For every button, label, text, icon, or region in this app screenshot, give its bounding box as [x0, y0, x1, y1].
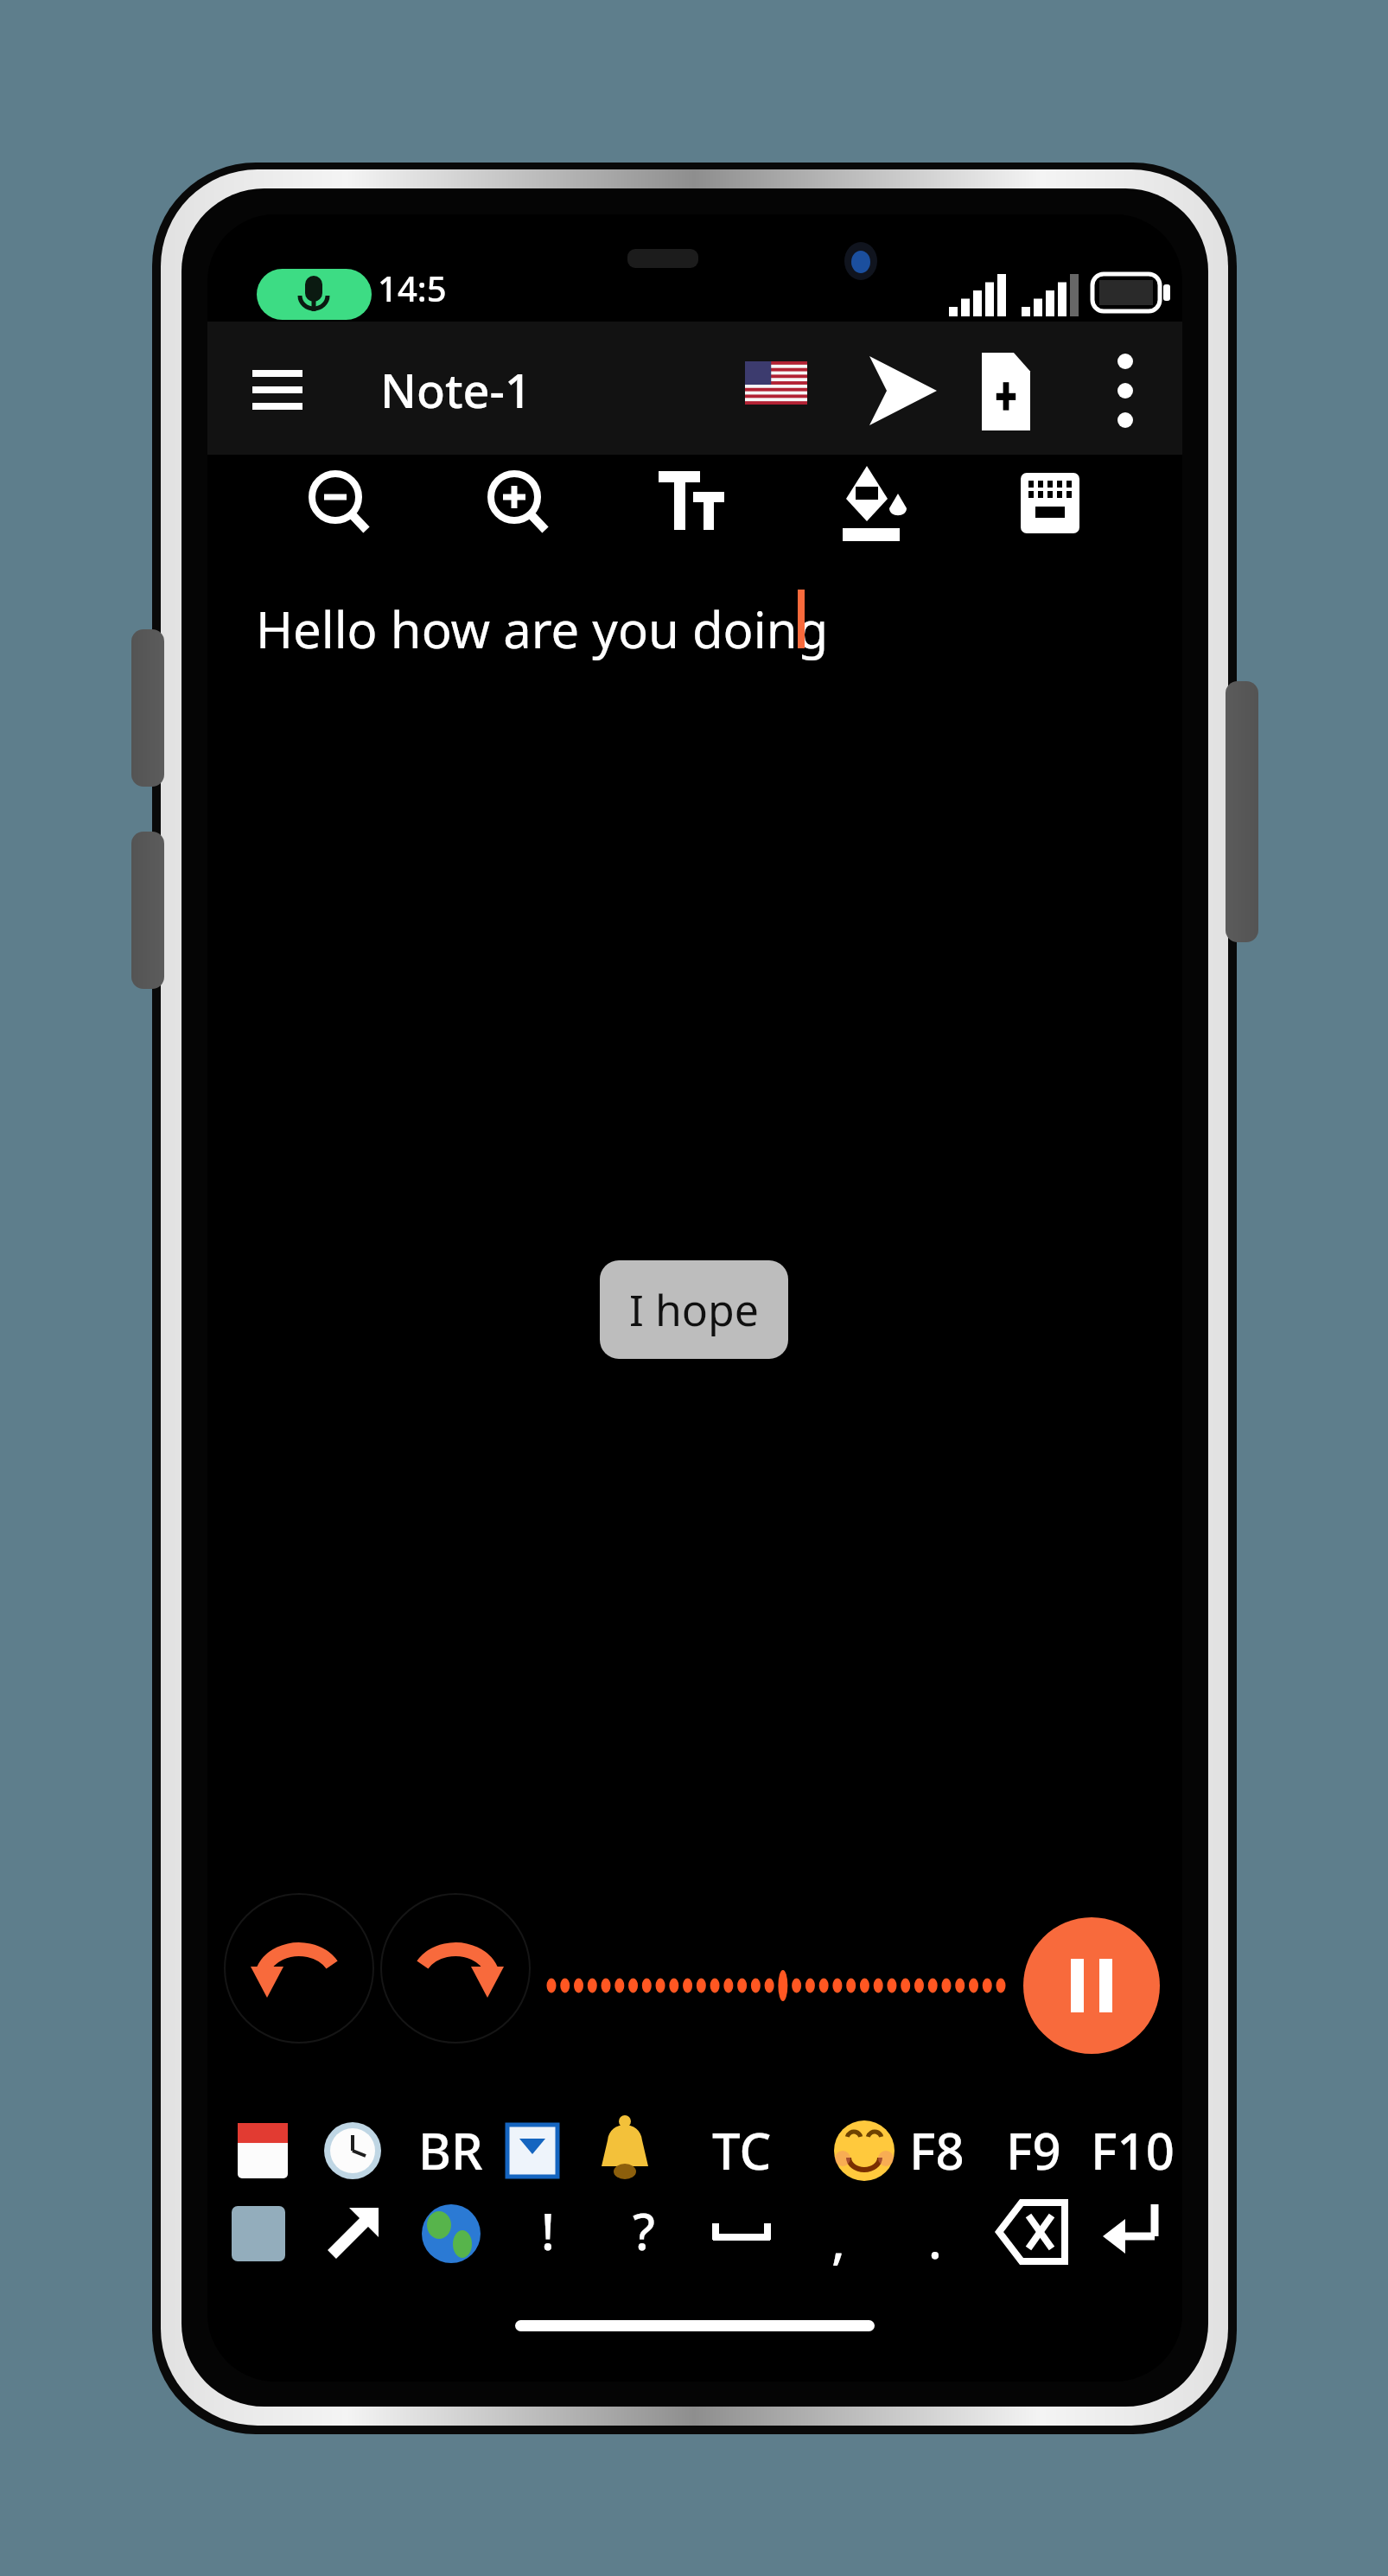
button[interactable]: Email: [493, 2110, 572, 2191]
button[interactable]: Redo: [392, 1922, 521, 2051]
button[interactable]: Language: [731, 342, 823, 436]
button[interactable]: TC: [693, 2110, 790, 2190]
staticText: .: [928, 2205, 942, 2273]
staticText: Note-1: [380, 358, 532, 422]
button[interactable]: Text size: [641, 456, 743, 553]
button[interactable]: Pause recording: [1022, 1916, 1161, 2055]
button[interactable]: Space: [704, 2194, 785, 2275]
staticText: !: [541, 2197, 555, 2265]
button[interactable]: Change language: [411, 2194, 493, 2275]
button[interactable]: Calendar: [226, 2110, 306, 2191]
staticText: 14:5: [378, 265, 447, 311]
button[interactable]: Fill colour: [820, 456, 922, 553]
button[interactable]: Shift: [315, 2194, 394, 2275]
staticText: F10: [1091, 2116, 1175, 2184]
button[interactable]: Undo: [235, 1922, 365, 2051]
button[interactable]: ?: [595, 2190, 692, 2270]
button[interactable]: Zoom out: [285, 456, 387, 553]
button[interactable]: Emoji: [825, 2110, 906, 2191]
button[interactable]: Zoom in: [464, 456, 566, 553]
button[interactable]: Enter: [1091, 2194, 1172, 2275]
button[interactable]: Clock: [316, 2110, 396, 2191]
staticText: TC: [712, 2116, 772, 2184]
button[interactable]: Keyboard: [1000, 456, 1102, 553]
button[interactable]: Note-1: [380, 358, 532, 422]
staticText: F8: [909, 2116, 965, 2184]
button[interactable]: !: [500, 2190, 596, 2270]
staticText: F9: [1006, 2116, 1061, 2184]
button[interactable]: ,: [790, 2199, 887, 2279]
button[interactable]: I hope: [600, 1260, 788, 1359]
button[interactable]: Notification: [586, 2110, 665, 2191]
staticText: I hope: [629, 1280, 760, 1339]
staticText: ,: [831, 2205, 845, 2273]
button[interactable]: New note: [971, 339, 1061, 439]
button[interactable]: .: [887, 2199, 984, 2279]
button[interactable]: F9: [985, 2110, 1082, 2190]
staticText: ?: [633, 2197, 655, 2265]
button[interactable]: F8: [888, 2110, 985, 2190]
button[interactable]: F10: [1084, 2110, 1181, 2190]
button[interactable]: Backspace: [994, 2194, 1075, 2275]
staticText: BR: [418, 2116, 483, 2184]
button[interactable]: BR: [402, 2110, 499, 2190]
button[interactable]: More options: [1096, 339, 1160, 439]
staticText: Hello how are you doing: [256, 595, 829, 663]
button[interactable]: Letters: [225, 2194, 304, 2275]
button[interactable]: Send: [856, 341, 951, 437]
button[interactable]: Menu: [235, 342, 322, 436]
